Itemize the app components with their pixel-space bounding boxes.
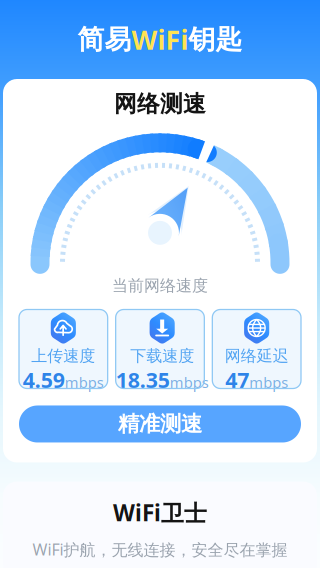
staticText: 网络延迟 [225, 346, 289, 366]
staticText: 当前网络速度 [112, 276, 208, 295]
staticText: 4.59 [23, 366, 65, 394]
staticText: 网络测速 [114, 90, 206, 118]
button[interactable]: 精准测速 [19, 405, 301, 442]
staticText: 47 [225, 366, 249, 394]
staticText: 下载速度 [130, 346, 194, 366]
staticText: 钥匙 [188, 23, 242, 56]
staticText: mbps [65, 373, 104, 392]
staticText: WiFi [131, 22, 188, 57]
staticText: 上传速度 [31, 346, 95, 366]
staticText: 简易 [77, 23, 131, 56]
staticText: 精准测速 [118, 411, 202, 437]
staticText: WiFi卫士 [113, 497, 207, 528]
staticText: WiFi护航，无线连接，安全尽在掌握 [32, 539, 287, 560]
staticText: mbps [249, 373, 288, 392]
staticText: 18.35 [116, 366, 170, 394]
staticText: mbps [170, 373, 209, 392]
